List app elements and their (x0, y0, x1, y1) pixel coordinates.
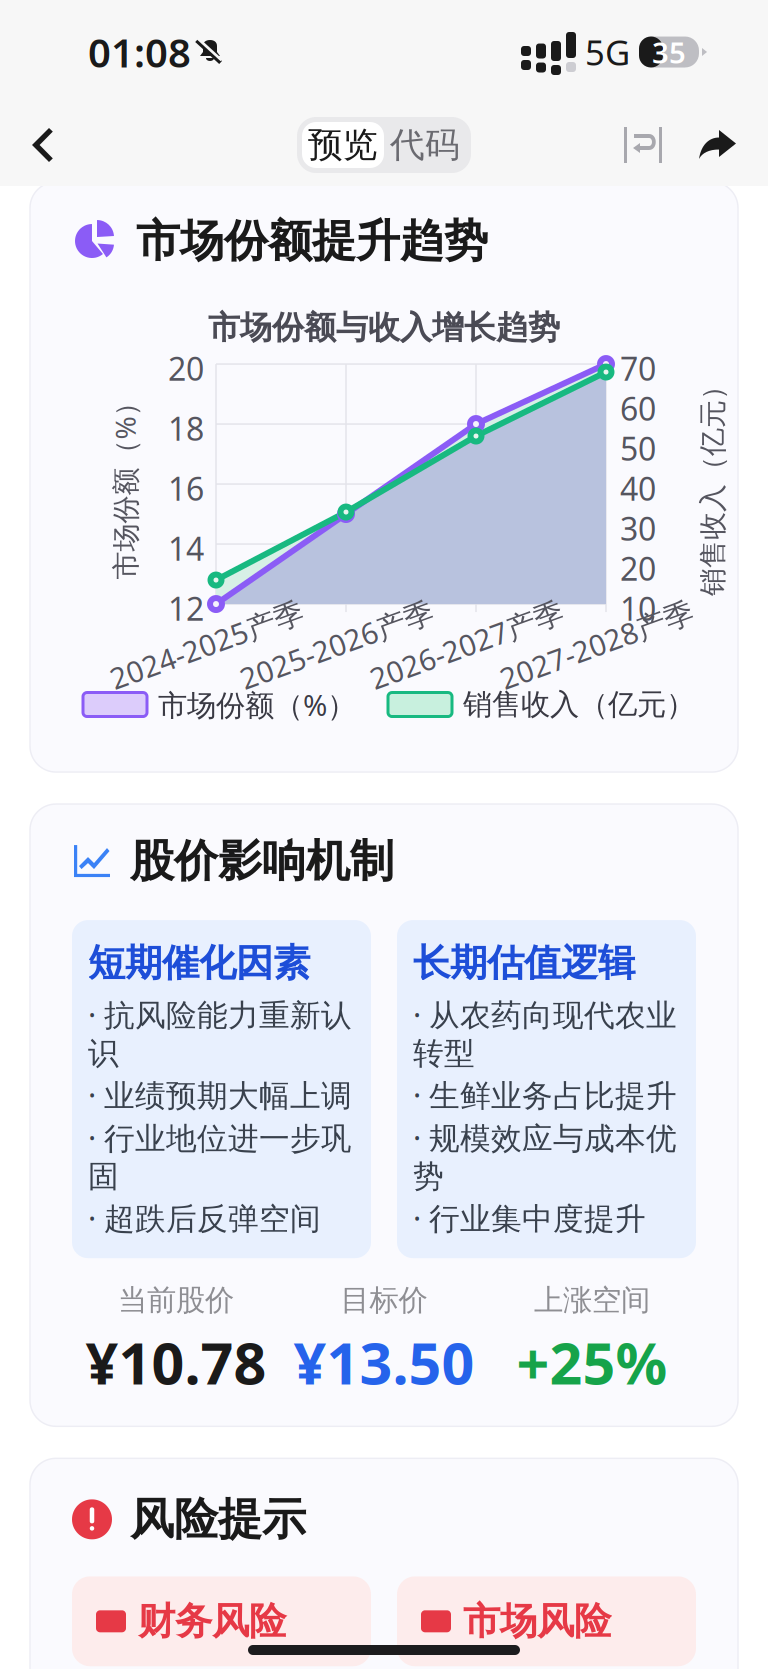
staticText: 短期催化因素 (88, 940, 310, 986)
staticText: 长期估值逻辑 (413, 940, 635, 986)
staticText: · 业绩预期大幅上调 (88, 1074, 352, 1115)
staticText: 01:08 (88, 25, 191, 78)
staticText: 股价影响机制 (130, 834, 394, 888)
staticText: 50 (620, 427, 656, 469)
staticText: 2027-2028产季 (495, 627, 698, 666)
staticText: · 规模效应与成本优势 (413, 1117, 677, 1195)
staticText: ¥10.78 (85, 1324, 266, 1400)
staticText: 财务风险 (138, 1598, 286, 1644)
staticText: · 行业地位进一步巩固 (88, 1117, 352, 1195)
staticText: 市场风险 (463, 1598, 611, 1644)
staticText: · 生鲜业务占比提升 (413, 1074, 677, 1115)
staticText: 18 (168, 407, 204, 449)
staticText: 70 (620, 347, 656, 389)
staticText: 2025-2026产季 (235, 627, 438, 666)
staticText: 2024-2025产季 (105, 627, 308, 666)
staticText: 2026-2027产季 (365, 627, 568, 666)
staticText: 10 (620, 587, 656, 629)
button[interactable]: Back (0, 111, 56, 179)
staticText: 20 (620, 547, 656, 589)
staticText: 当前股价 (118, 1282, 234, 1318)
staticText: · 抗风险能力重新认识 (88, 994, 352, 1072)
staticText: 销售收入（亿元） (463, 686, 695, 722)
staticText: 30 (620, 507, 656, 549)
staticText: 市场份额提升趋势 (136, 214, 488, 268)
staticText: 14 (168, 527, 204, 569)
staticText: ¥13.50 (293, 1324, 474, 1400)
staticText: 12 (168, 587, 204, 629)
staticText: 预览 (308, 124, 378, 166)
button[interactable]: 代码 (384, 122, 466, 168)
staticText: · 行业集中度提升 (413, 1197, 646, 1238)
staticText: · 超跌后反弹空间 (88, 1197, 321, 1238)
staticText: 5G (585, 29, 630, 75)
staticText: 16 (168, 467, 204, 509)
staticText: +25% (516, 1324, 667, 1400)
staticText: · 从农药向现代农业转型 (413, 994, 677, 1072)
staticText: 40 (620, 467, 656, 509)
staticText: 20 (168, 347, 204, 389)
staticText: 市场份额（%） (29, 465, 220, 503)
staticText: 目标价 (340, 1282, 427, 1318)
button[interactable]: Fit width (618, 113, 668, 177)
staticText: 上涨空间 (534, 1282, 650, 1318)
staticText: 销售收入（亿元） (601, 467, 768, 501)
staticText: 市场份额（%） (158, 685, 356, 724)
button[interactable]: 预览 (302, 122, 384, 168)
staticText: 市场份额与收入增长趋势 (208, 308, 560, 347)
staticText: 60 (620, 387, 656, 429)
staticText: 35 (652, 32, 686, 71)
staticText: 风险提示 (130, 1492, 306, 1546)
button[interactable]: Share (696, 114, 768, 176)
staticText: 代码 (390, 124, 460, 166)
